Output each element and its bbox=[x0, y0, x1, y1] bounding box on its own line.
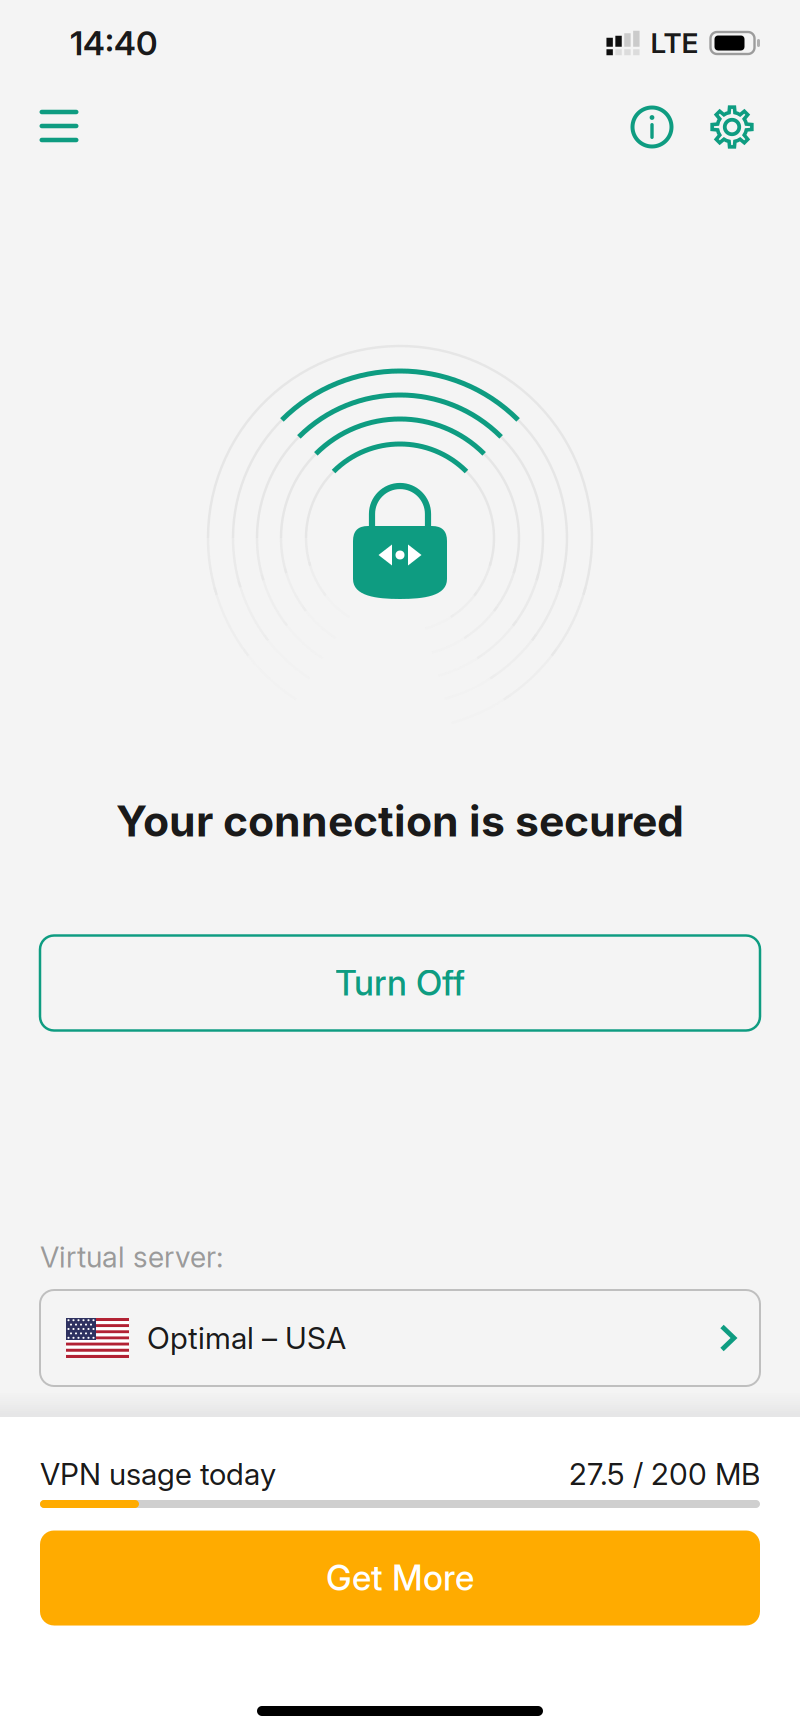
staticText: Get More bbox=[326, 1557, 474, 1599]
button[interactable]: Get More bbox=[40, 1530, 760, 1625]
staticText: LTE bbox=[650, 26, 698, 60]
staticText: VPN usage today bbox=[40, 1456, 276, 1492]
button[interactable]: Settings bbox=[696, 91, 768, 163]
staticText: 14:40 bbox=[70, 23, 158, 63]
button[interactable]: Optimal – USA bbox=[40, 1290, 760, 1386]
staticText: 27.5 / 200 MB bbox=[569, 1456, 760, 1492]
staticText: Optimal – USA bbox=[147, 1320, 346, 1356]
button[interactable]: Menu bbox=[21, 90, 97, 162]
button[interactable]: Information bbox=[616, 91, 688, 163]
staticText: Your connection is secured bbox=[116, 795, 684, 847]
staticText: Turn Off bbox=[335, 962, 465, 1004]
staticText: Virtual server: bbox=[40, 1240, 223, 1274]
button[interactable]: Turn Off bbox=[40, 935, 760, 1030]
